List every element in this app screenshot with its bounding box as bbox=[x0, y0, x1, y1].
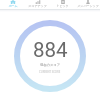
staticText: メンバーシップ bbox=[77, 4, 99, 8]
button[interactable]: スコアアップ bbox=[25, 0, 50, 9]
staticText: 現在のスコア bbox=[40, 63, 61, 67]
button[interactable]: メンバーシップ bbox=[75, 0, 100, 9]
button[interactable]: トピック bbox=[50, 0, 75, 9]
staticText: トピック bbox=[56, 4, 69, 8]
button[interactable]: ホーム bbox=[0, 0, 25, 9]
staticText: ホーム bbox=[8, 4, 18, 8]
staticText: 884 bbox=[33, 38, 68, 58]
staticText: CURRENT SCORE bbox=[39, 70, 61, 74]
staticText: スコアアップ bbox=[28, 4, 47, 8]
